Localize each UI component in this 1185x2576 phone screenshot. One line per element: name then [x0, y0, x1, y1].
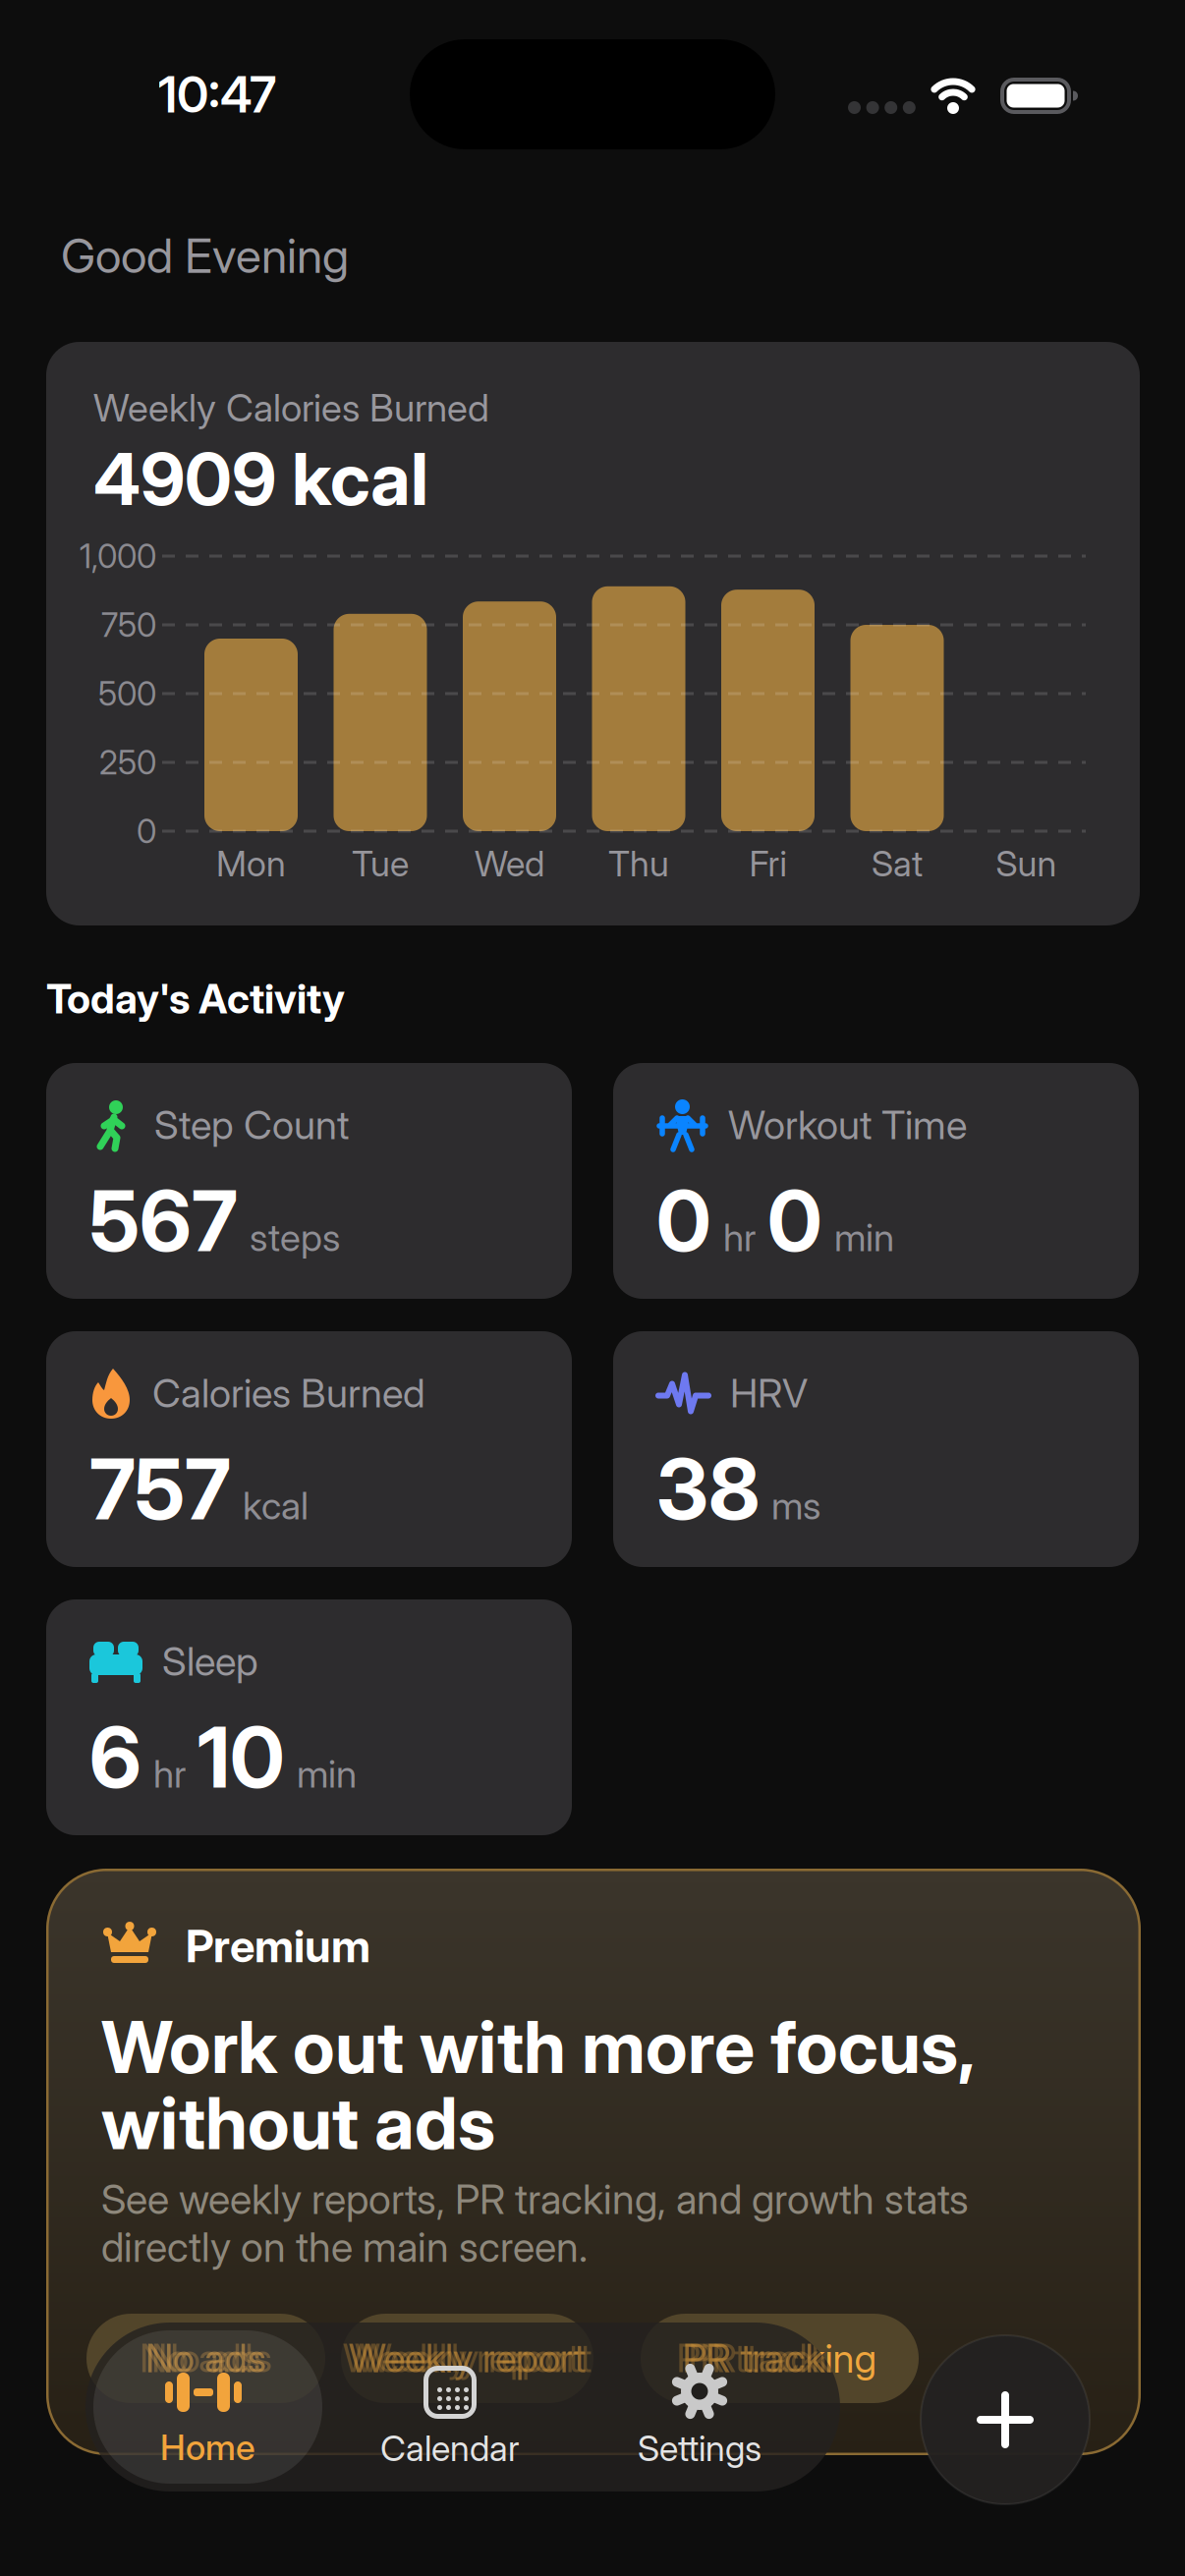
- staticText: 567: [89, 1171, 238, 1270]
- staticText: 4909 kcal: [93, 436, 428, 521]
- staticText: Today's Activity: [46, 975, 345, 1023]
- staticText: No ads: [145, 2335, 266, 2382]
- staticText: Premium: [186, 1920, 370, 1972]
- button[interactable]: Workout Time: [613, 1063, 1139, 1299]
- staticText: min: [834, 1215, 894, 1260]
- staticText: Sun: [996, 843, 1057, 885]
- staticText: kcal: [243, 1483, 309, 1528]
- staticText: ms: [771, 1483, 820, 1528]
- staticText: hr: [723, 1215, 756, 1260]
- button[interactable]: Premium: [46, 1869, 1141, 2455]
- staticText: Home: [160, 2426, 255, 2468]
- staticText: Weekly Calories Burned: [93, 385, 489, 430]
- staticText: Tue: [352, 843, 409, 885]
- staticText: 250: [99, 743, 156, 782]
- staticText: Step Count: [154, 1102, 349, 1148]
- staticText: 757: [89, 1439, 231, 1538]
- button[interactable]: Calories Burned: [46, 1331, 572, 1567]
- staticText: 10: [197, 1708, 285, 1806]
- staticText: No ads: [151, 2335, 272, 2381]
- staticText: PR tracking: [682, 2335, 877, 2382]
- button[interactable]: Add: [920, 2334, 1091, 2505]
- button[interactable]: Sleep: [46, 1599, 572, 1835]
- staticText: steps: [250, 1215, 340, 1260]
- staticText: Settings: [638, 2427, 762, 2469]
- staticText: Mon: [216, 843, 286, 885]
- staticText: Wed: [475, 843, 544, 885]
- staticText: 6: [89, 1708, 141, 1806]
- staticText: PR tracking: [688, 2335, 883, 2381]
- button[interactable]: Home: [93, 2330, 322, 2484]
- staticText: 0: [656, 1171, 711, 1270]
- staticText: HRV: [730, 1370, 808, 1416]
- staticText: Calendar: [380, 2427, 520, 2469]
- staticText: 38: [656, 1439, 760, 1538]
- staticText: Workout Time: [728, 1102, 967, 1148]
- staticText: Sat: [872, 843, 923, 885]
- staticText: Sleep: [162, 1638, 258, 1685]
- staticText: PR tracking: [677, 2335, 871, 2381]
- staticText: 0: [137, 812, 156, 850]
- button[interactable]: Settings: [601, 2364, 798, 2495]
- staticText: 0: [767, 1171, 822, 1270]
- staticText: Fri: [749, 843, 787, 885]
- staticText: Weekly report: [343, 2335, 580, 2381]
- staticText: Good Evening: [61, 228, 349, 284]
- staticText: Weekly report: [349, 2335, 586, 2382]
- staticText: Work out with more focus,: [101, 2004, 976, 2089]
- staticText: 10:47: [158, 65, 276, 124]
- staticText: 500: [98, 674, 156, 713]
- button[interactable]: Step Count: [46, 1063, 572, 1299]
- staticText: min: [297, 1751, 357, 1796]
- staticText: See weekly reports, PR tracking, and gro…: [101, 2175, 969, 2271]
- staticText: 750: [101, 605, 156, 644]
- staticText: Thu: [608, 843, 669, 885]
- button[interactable]: Calendar: [352, 2366, 548, 2495]
- staticText: without ads: [101, 2080, 495, 2165]
- staticText: hr: [153, 1751, 186, 1796]
- staticText: Calories Burned: [152, 1370, 425, 1416]
- staticText: 1,000: [80, 537, 156, 575]
- button[interactable]: HRV: [613, 1331, 1139, 1567]
- staticText: No ads: [145, 2335, 266, 2381]
- staticText: PR tracking: [682, 2335, 877, 2381]
- staticText: Weekly report: [355, 2335, 592, 2381]
- staticText: Weekly report: [349, 2335, 586, 2381]
- staticText: No ads: [140, 2335, 260, 2381]
